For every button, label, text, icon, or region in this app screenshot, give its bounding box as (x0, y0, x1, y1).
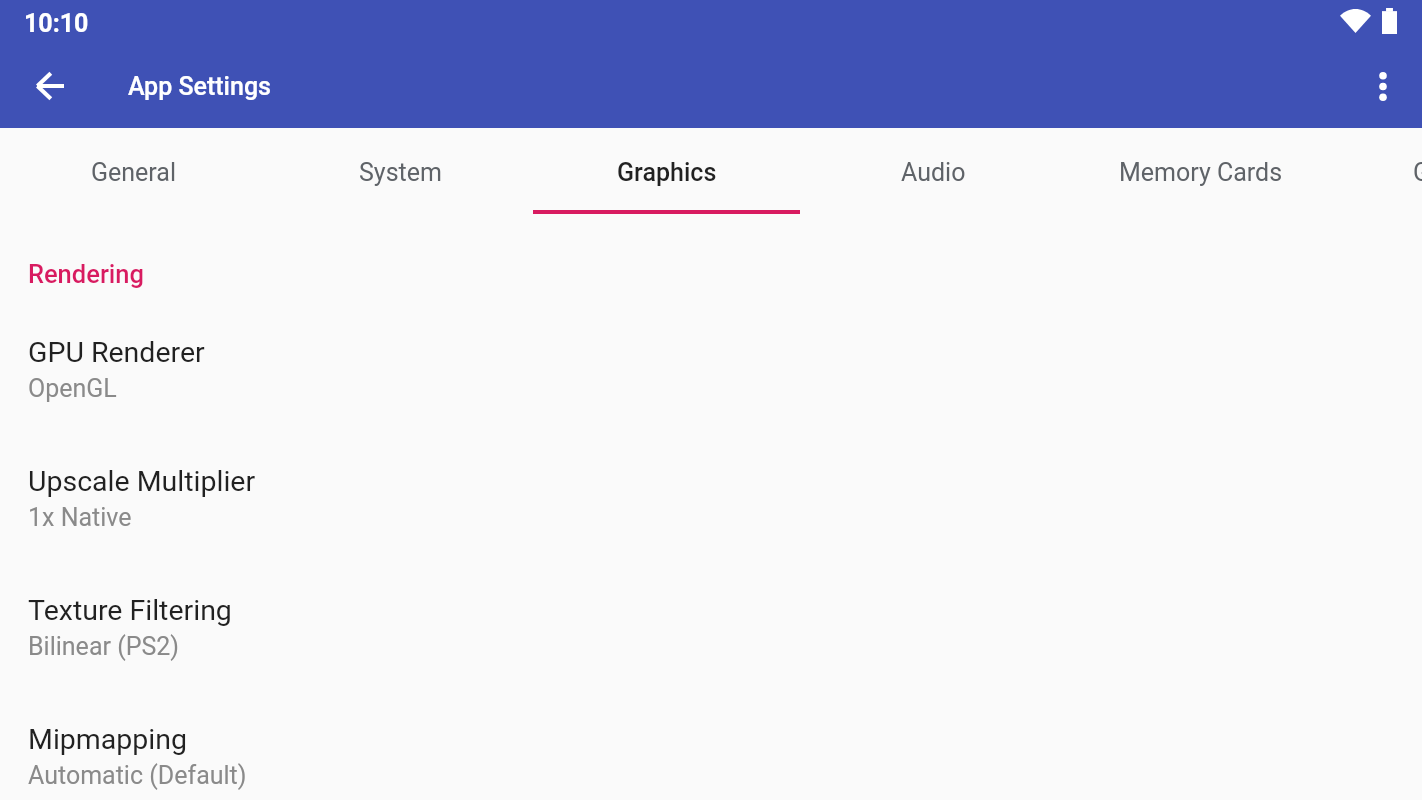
button[interactable]: GPU Renderer (0, 306, 1422, 435)
button[interactable]: More options (1347, 50, 1419, 122)
button[interactable]: Mipmapping (0, 693, 1422, 800)
staticText: Texture Filtering (28, 594, 232, 627)
button[interactable]: Memory Cards (1067, 128, 1334, 214)
staticText: Memory Cards (1119, 158, 1283, 187)
staticText: OpenGL (28, 374, 117, 403)
staticText: 1x Native (28, 503, 132, 532)
staticText: Audio (901, 158, 966, 187)
button[interactable]: Gamepad (1333, 128, 1422, 214)
staticText: GPU Renderer (28, 336, 205, 369)
staticText: App Settings (128, 72, 271, 101)
staticText: Gamepad (1413, 158, 1422, 187)
staticText: Mipmapping (28, 723, 187, 756)
staticText: Automatic (Default) (28, 761, 247, 790)
staticText: 10:10 (24, 9, 89, 38)
staticText: System (359, 158, 442, 187)
staticText: Bilinear (PS2) (28, 632, 180, 661)
button[interactable]: Upscale Multiplier (0, 435, 1422, 564)
staticText: Upscale Multiplier (28, 465, 256, 498)
staticText: Rendering (28, 259, 145, 289)
button[interactable]: Navigate up (13, 50, 85, 122)
button[interactable]: System (267, 128, 534, 214)
button[interactable]: Texture Filtering (0, 564, 1422, 693)
button[interactable]: General (0, 128, 267, 214)
staticText: Graphics (617, 158, 717, 187)
button[interactable]: Audio (800, 128, 1067, 214)
button[interactable]: Graphics (533, 128, 800, 214)
staticText: General (91, 158, 177, 187)
